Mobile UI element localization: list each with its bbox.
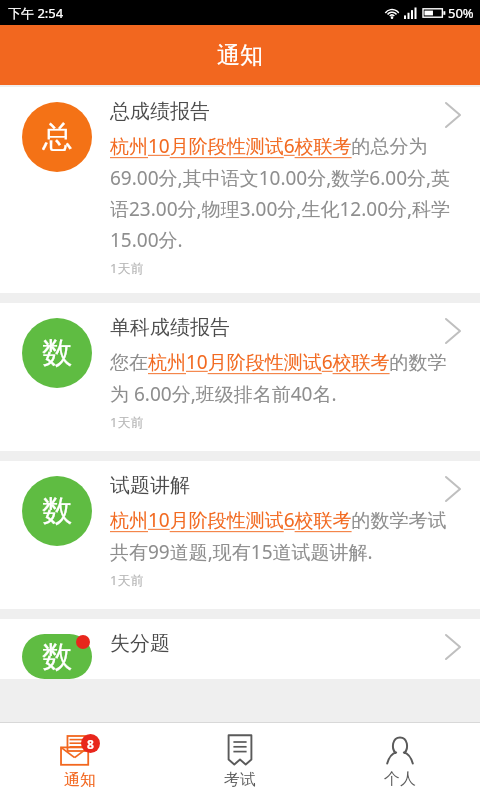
staticText: 数 [42,492,72,530]
button[interactable]: 数 [0,461,480,609]
button[interactable]: 考试 [160,723,320,800]
button[interactable]: 通知 [0,723,160,800]
staticText: 数 [42,334,72,372]
staticText: 考试 [224,770,256,790]
button[interactable]: 总 [0,87,480,293]
staticText: 失分题 [110,631,170,656]
button[interactable]: 数 [0,303,480,451]
staticText: 1天前 [110,571,144,589]
staticText: 杭州10月阶段性测试6校联考的数学考试共有99道题,现有15道试题讲解. [110,507,460,564]
staticText: 单科成绩报告 [110,315,230,340]
button[interactable]: 数 [0,619,480,679]
staticText: 您在杭州10月阶段性测试6校联考的数学为 6.00分,班级排名前40名. [110,349,460,406]
staticText: 8 [87,736,94,752]
staticText: 1天前 [110,259,144,277]
button[interactable]: 个人 [320,723,480,800]
staticText: 50% [448,4,474,22]
staticText: 数 [42,638,72,676]
staticText: 杭州10月阶段性测试6校联考的总分为69.00分,其中语文10.00分,数学6.… [110,133,460,252]
staticText: 总 [42,118,72,156]
staticText: 下午 2:54 [8,4,64,22]
staticText: 试题讲解 [110,473,190,498]
staticText: 个人 [384,769,416,789]
staticText: 通知 [217,41,263,70]
staticText: 总成绩报告 [110,99,210,124]
staticText: 通知 [64,770,96,790]
staticText: 1天前 [110,413,144,431]
